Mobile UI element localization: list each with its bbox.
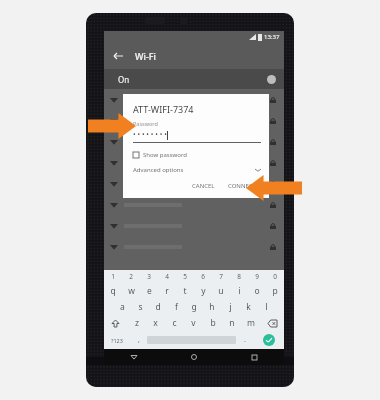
button[interactable]: Advanced options bbox=[133, 166, 261, 174]
button[interactable]: Home bbox=[164, 349, 224, 365]
button[interactable]: ?123 bbox=[104, 331, 130, 349]
button[interactable]: g bbox=[185, 299, 203, 315]
staticText: Password bbox=[133, 120, 158, 127]
staticText: m bbox=[247, 317, 255, 329]
button[interactable]: CANCEL bbox=[187, 180, 220, 192]
button[interactable]: Backspace bbox=[260, 315, 284, 331]
staticText: w bbox=[128, 285, 135, 297]
button[interactable]: z bbox=[127, 315, 146, 331]
staticText: 1 bbox=[111, 272, 115, 281]
button[interactable]: v bbox=[184, 315, 203, 331]
button[interactable]: x bbox=[146, 315, 165, 331]
staticText: 7 bbox=[219, 272, 223, 281]
staticText: 4 bbox=[165, 272, 169, 281]
staticText: 0 bbox=[273, 272, 277, 281]
staticText: e bbox=[147, 285, 152, 297]
staticText: 5 bbox=[183, 272, 187, 281]
button[interactable]: m bbox=[241, 315, 260, 331]
staticText: b bbox=[210, 317, 216, 329]
button[interactable]: t bbox=[176, 283, 194, 299]
staticText: i bbox=[238, 285, 241, 297]
button[interactable]: h bbox=[203, 299, 221, 315]
staticText: v bbox=[191, 317, 196, 329]
staticText: On bbox=[118, 74, 130, 85]
button[interactable]: e bbox=[140, 283, 158, 299]
staticText: 9 bbox=[255, 272, 259, 281]
button[interactable]: l bbox=[257, 299, 275, 315]
staticText: q bbox=[110, 285, 116, 297]
button[interactable] bbox=[104, 152, 284, 173]
button[interactable]: u bbox=[212, 283, 230, 299]
staticText: f bbox=[175, 301, 178, 313]
button[interactable]: c bbox=[165, 315, 184, 331]
button[interactable]: k bbox=[239, 299, 257, 315]
button[interactable]: . bbox=[236, 331, 253, 349]
button[interactable]: 1 bbox=[104, 270, 122, 283]
staticText: 8 bbox=[237, 272, 241, 281]
staticText: • • • • • • • • bbox=[133, 130, 167, 140]
button[interactable]: Recents bbox=[224, 349, 284, 365]
button[interactable]: a bbox=[113, 299, 131, 315]
button[interactable]: CONNECT bbox=[223, 180, 261, 192]
button[interactable]: d bbox=[149, 299, 167, 315]
button[interactable]: s bbox=[131, 299, 149, 315]
button[interactable]: 7 bbox=[212, 270, 230, 283]
button[interactable]: f bbox=[167, 299, 185, 315]
button[interactable]: Enter bbox=[253, 331, 284, 349]
staticText: r bbox=[165, 285, 169, 297]
staticText: n bbox=[229, 317, 235, 329]
button[interactable]: r bbox=[158, 283, 176, 299]
staticText: , bbox=[138, 335, 140, 345]
button[interactable]: i bbox=[230, 283, 248, 299]
staticText: Advanced options bbox=[133, 166, 184, 174]
staticText: 2 bbox=[129, 272, 133, 281]
button[interactable]: n bbox=[222, 315, 241, 331]
button[interactable]: y bbox=[194, 283, 212, 299]
staticText: j bbox=[229, 301, 232, 313]
button[interactable] bbox=[104, 194, 284, 215]
staticText: ATT-WIFI-7374 bbox=[133, 103, 194, 115]
staticText: c bbox=[172, 317, 177, 329]
staticText: Show password bbox=[143, 151, 187, 159]
button[interactable] bbox=[104, 110, 284, 131]
button[interactable]: 4 bbox=[158, 270, 176, 283]
staticText: Wi-Fi bbox=[135, 50, 156, 62]
button[interactable]: q bbox=[104, 283, 122, 299]
button[interactable] bbox=[104, 215, 284, 236]
staticText: CANCEL bbox=[192, 182, 215, 190]
button[interactable]: 2 bbox=[122, 270, 140, 283]
button[interactable]: w bbox=[122, 283, 140, 299]
staticText: y bbox=[201, 285, 206, 297]
staticText: ?123 bbox=[111, 337, 123, 344]
button[interactable] bbox=[104, 236, 284, 257]
button[interactable] bbox=[104, 131, 284, 152]
button[interactable]: b bbox=[203, 315, 222, 331]
button[interactable] bbox=[104, 173, 284, 194]
staticText: z bbox=[135, 317, 139, 329]
button[interactable]: p bbox=[266, 283, 284, 299]
button[interactable]: o bbox=[248, 283, 266, 299]
staticText: h bbox=[209, 301, 215, 313]
button[interactable]: Back bbox=[104, 349, 164, 365]
staticText: u bbox=[218, 285, 224, 297]
staticText: o bbox=[254, 285, 260, 297]
button[interactable]: Shift bbox=[104, 315, 127, 331]
button[interactable] bbox=[104, 89, 284, 110]
button[interactable]: 9 bbox=[248, 270, 266, 283]
button[interactable]: 8 bbox=[230, 270, 248, 283]
staticText: 3 bbox=[147, 272, 151, 281]
staticText: 13:37 bbox=[264, 33, 280, 41]
button[interactable]: On bbox=[104, 69, 284, 89]
button[interactable]: 3 bbox=[140, 270, 158, 283]
staticText: x bbox=[153, 317, 158, 329]
button[interactable]: , bbox=[130, 331, 147, 349]
button[interactable]: 0 bbox=[266, 270, 284, 283]
staticText: p bbox=[272, 285, 278, 297]
button[interactable]: 6 bbox=[194, 270, 212, 283]
button[interactable]: j bbox=[221, 299, 239, 315]
button[interactable]: Back bbox=[109, 47, 127, 65]
button[interactable]: 5 bbox=[176, 270, 194, 283]
staticText: t bbox=[183, 285, 187, 297]
button[interactable]: Show password bbox=[133, 151, 187, 159]
